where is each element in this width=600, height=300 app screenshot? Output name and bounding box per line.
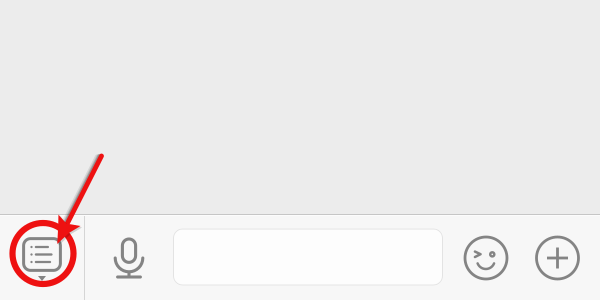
button[interactable]: Emoji bbox=[457, 214, 515, 300]
button[interactable]: Quick replies bbox=[0, 214, 84, 300]
button[interactable]: Message input field bbox=[173, 214, 457, 300]
button[interactable]: Add attachment bbox=[515, 214, 600, 300]
button[interactable]: Record voice message bbox=[85, 214, 173, 300]
